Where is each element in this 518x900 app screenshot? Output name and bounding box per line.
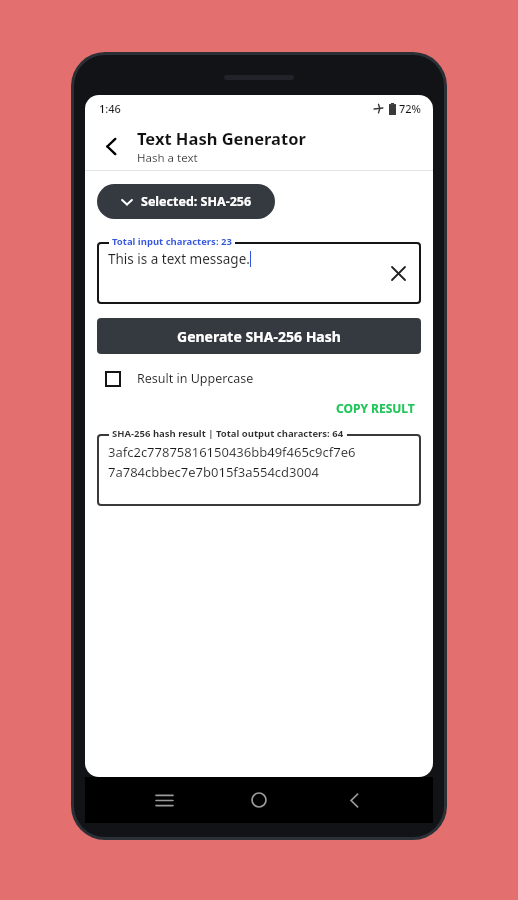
button[interactable]: Result in Uppercase <box>97 366 254 391</box>
staticText: 7a784cbbec7e7b015f3a554cd3004 <box>108 463 319 481</box>
staticText: COPY RESULT <box>336 400 415 416</box>
button[interactable]: COPY RESULT <box>330 397 421 419</box>
staticText: Hash a text <box>137 150 198 166</box>
button[interactable]: Generate SHA-256 Hash <box>97 318 421 354</box>
staticText: 72% <box>399 101 421 116</box>
staticText: 3afc2c77875816150436bb49f465c9cf7e6 <box>108 443 356 461</box>
staticText: Total input characters: 23 <box>112 235 232 248</box>
button[interactable]: Back <box>93 128 129 164</box>
staticText: Result in Uppercase <box>137 370 254 387</box>
button[interactable]: Recent apps <box>147 783 181 817</box>
staticText: Generate SHA-256 Hash <box>177 327 341 346</box>
staticText: Selected: SHA-256 <box>141 193 252 210</box>
staticText: This is a text message. <box>108 250 250 268</box>
staticText: SHA-256 hash result | Total output chara… <box>112 427 344 440</box>
staticText: Text Hash Generator <box>137 127 306 149</box>
staticText: 1:46 <box>99 101 121 116</box>
button[interactable]: Clear text <box>385 260 411 286</box>
button[interactable]: Selected: SHA-256 <box>97 184 275 219</box>
button[interactable]: Home <box>242 783 276 817</box>
button[interactable]: Back <box>337 783 371 817</box>
